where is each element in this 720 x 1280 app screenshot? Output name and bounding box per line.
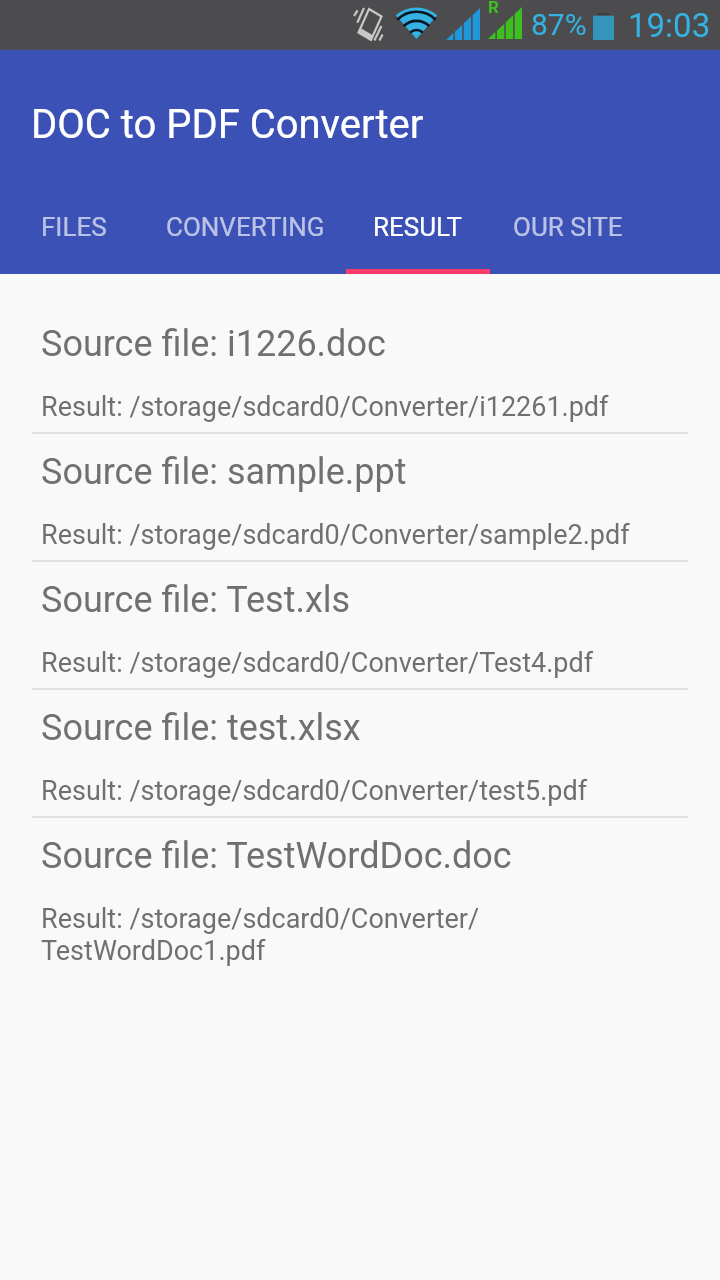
staticText: 87% <box>531 7 587 42</box>
staticText: OUR SITE <box>513 212 623 242</box>
staticText: 19:03 <box>628 6 711 45</box>
other: Signal strength <box>488 7 522 39</box>
staticText: Source file: sample.ppt <box>41 451 407 493</box>
button[interactable]: CONVERTING <box>145 174 346 274</box>
staticText: Source file: test.xlsx <box>41 707 361 749</box>
button[interactable]: FILES <box>2 174 145 274</box>
staticText: R <box>488 0 499 17</box>
staticText: Result: /storage/sdcard0/Converter/sampl… <box>41 519 630 551</box>
button[interactable]: Source file: TestWordDoc.doc <box>0 818 720 976</box>
other: Signal strength <box>446 8 480 40</box>
button[interactable]: Source file: i1226.doc <box>0 274 720 432</box>
other: Wi-Fi <box>396 8 437 39</box>
other: Vibrate mode <box>351 7 383 42</box>
staticText: RESULT <box>373 212 463 242</box>
staticText: Result: /storage/sdcard0/Converter/TestW… <box>41 903 641 967</box>
staticText: Source file: TestWordDoc.doc <box>41 835 512 877</box>
button[interactable]: Source file: Test.xls <box>0 562 720 688</box>
button[interactable]: RESULT <box>346 174 490 274</box>
staticText: Source file: Test.xls <box>41 579 351 621</box>
other: Battery 87 percent <box>593 13 614 40</box>
staticText: Result: /storage/sdcard0/Converter/Test4… <box>41 647 594 679</box>
staticText: Source file: i1226.doc <box>41 323 386 365</box>
button[interactable]: OUR SITE <box>490 174 645 274</box>
staticText: FILES <box>41 212 107 242</box>
staticText: CONVERTING <box>166 212 325 242</box>
button[interactable]: Source file: sample.ppt <box>0 434 720 560</box>
staticText: DOC to PDF Converter <box>31 101 424 148</box>
button[interactable]: Source file: test.xlsx <box>0 690 720 816</box>
staticText: Result: /storage/sdcard0/Converter/i1226… <box>41 391 609 423</box>
staticText: Result: /storage/sdcard0/Converter/test5… <box>41 775 588 807</box>
